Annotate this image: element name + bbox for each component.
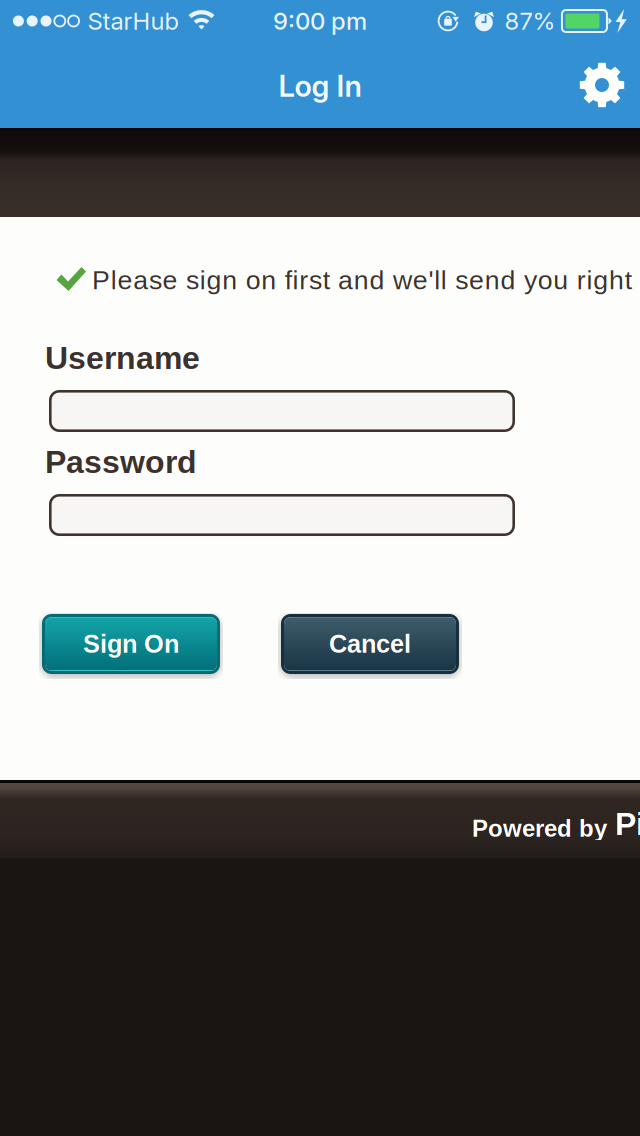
staticText: Password xyxy=(45,444,197,480)
staticText: Powered by xyxy=(472,815,607,842)
staticText: Log In xyxy=(278,68,361,104)
staticText: Username xyxy=(45,340,200,376)
button[interactable]: Settings xyxy=(569,52,635,118)
button[interactable]: Sign On xyxy=(41,612,221,676)
button[interactable]: Cancel xyxy=(280,612,460,676)
staticText: 87% xyxy=(504,6,555,35)
staticText: StarHub xyxy=(87,6,178,35)
staticText: Please sign on first and we'll send you … xyxy=(92,265,640,295)
staticText: Sign On xyxy=(83,630,179,658)
staticText: Pi xyxy=(615,806,640,842)
staticText: Cancel xyxy=(329,630,411,658)
staticText: 9:00 pm xyxy=(273,6,367,35)
